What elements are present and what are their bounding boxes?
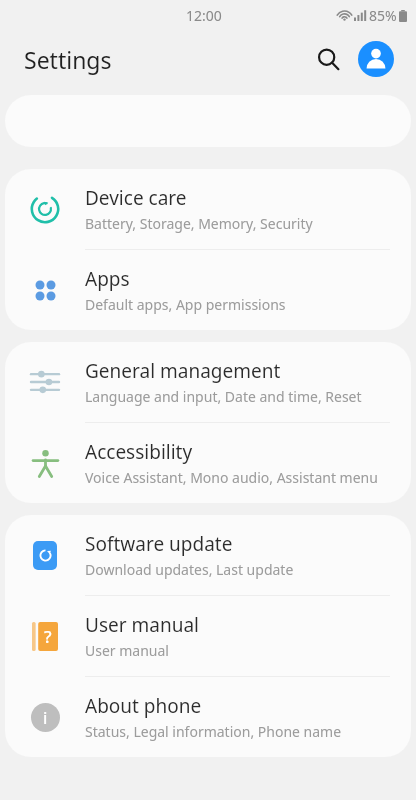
staticText: Settings bbox=[24, 44, 112, 75]
button[interactable]: General management bbox=[5, 342, 411, 422]
staticText: Language and input, Date and time, Reset bbox=[85, 387, 362, 406]
button[interactable]: i bbox=[5, 677, 411, 757]
button[interactable]: Account bbox=[354, 37, 398, 81]
staticText: User manual bbox=[85, 641, 169, 660]
staticText: Voice Assistant, Mono audio, Assistant m… bbox=[85, 468, 378, 487]
button[interactable]: ? bbox=[5, 596, 411, 676]
button[interactable]: Software update bbox=[5, 515, 411, 595]
staticText: 12:00 bbox=[186, 6, 222, 25]
staticText: Apps bbox=[85, 266, 130, 292]
button[interactable]: Apps bbox=[5, 250, 411, 330]
staticText: Download updates, Last update bbox=[85, 560, 294, 579]
button[interactable]: Search bbox=[306, 37, 350, 81]
staticText: User manual bbox=[85, 612, 199, 638]
staticText: ? bbox=[44, 625, 52, 648]
staticText: Device care bbox=[85, 185, 187, 211]
staticText: Accessibility bbox=[85, 439, 193, 465]
staticText: About phone bbox=[85, 693, 202, 719]
staticText: Status, Legal information, Phone name bbox=[85, 722, 342, 741]
staticText: General management bbox=[85, 358, 281, 384]
button[interactable]: Accessibility bbox=[5, 423, 411, 503]
staticText: Default apps, App permissions bbox=[85, 295, 286, 314]
staticText: Software update bbox=[85, 531, 233, 557]
button[interactable]: Device care bbox=[5, 169, 411, 249]
staticText: Battery, Storage, Memory, Security bbox=[85, 214, 313, 233]
staticText: 85% bbox=[369, 6, 397, 25]
staticText: i bbox=[43, 707, 48, 729]
